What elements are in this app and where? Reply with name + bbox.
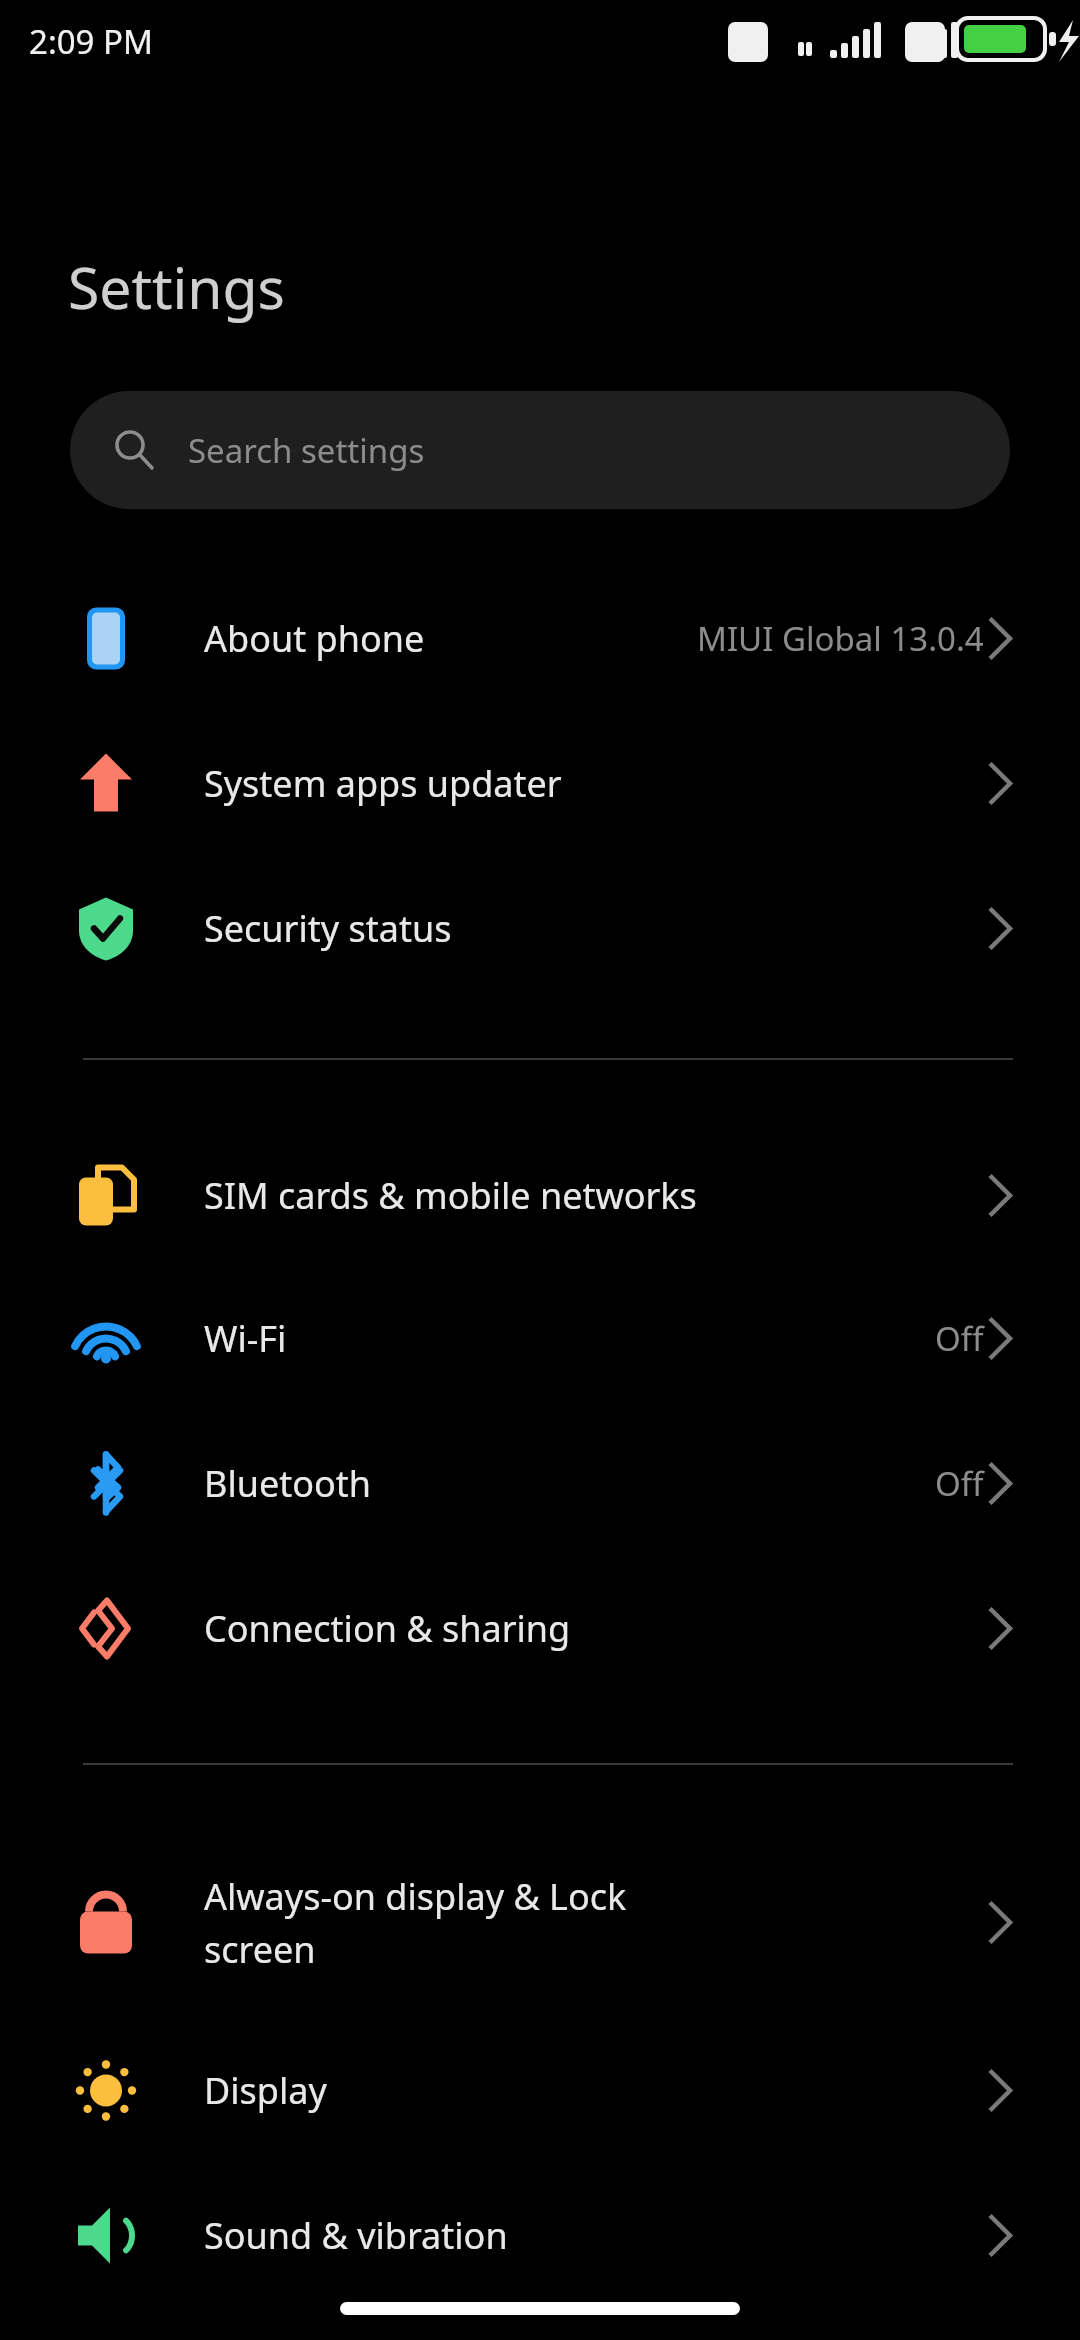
staticText: Always-on display & Lock screen xyxy=(204,1872,627,1973)
staticText: MIUI Global 13.0.4 xyxy=(697,616,984,661)
staticText: Off xyxy=(935,1316,984,1361)
staticText: Connection & sharing xyxy=(204,1604,571,1653)
button[interactable]: SIM cards & mobile networks xyxy=(0,1123,1080,1268)
button[interactable]: About phone xyxy=(0,566,1080,711)
staticText: 2:09 PM xyxy=(29,19,153,64)
staticText: Security status xyxy=(204,904,452,953)
button[interactable]: Connection & sharing xyxy=(0,1556,1080,1701)
staticText: SIM cards & mobile networks xyxy=(204,1171,697,1220)
button[interactable]: Wi-Fi xyxy=(0,1266,1080,1411)
button[interactable]: Search settings xyxy=(70,391,1010,509)
staticText: System apps updater xyxy=(204,759,562,808)
button[interactable]: Sound & vibration xyxy=(0,2163,1080,2308)
staticText: Wi-Fi xyxy=(204,1314,287,1363)
staticText: Bluetooth xyxy=(204,1459,372,1508)
button[interactable]: Display xyxy=(0,2018,1080,2163)
staticText: Off xyxy=(935,1461,984,1506)
button[interactable]: Security status xyxy=(0,856,1080,1001)
staticText: Settings xyxy=(68,248,285,326)
button[interactable]: Bluetooth xyxy=(0,1411,1080,1556)
staticText: About phone xyxy=(204,614,425,663)
staticText: Sound & vibration xyxy=(204,2211,508,2260)
button[interactable]: System apps updater xyxy=(0,711,1080,856)
staticText: Display xyxy=(204,2066,327,2115)
button[interactable]: Always-on display & Lock screen xyxy=(0,1850,1080,1995)
staticText: Search settings xyxy=(188,428,425,473)
